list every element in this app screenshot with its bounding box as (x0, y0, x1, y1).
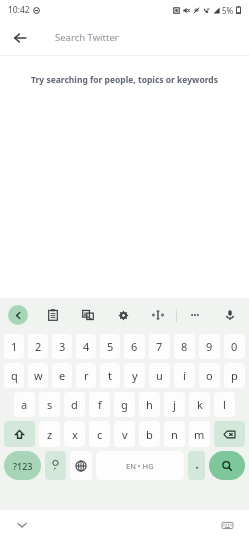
button[interactable]: z (39, 421, 60, 447)
staticText: Search Twitter (55, 31, 119, 44)
button[interactable]: Change language (70, 451, 92, 480)
button[interactable]: Emoji and comma (45, 451, 66, 480)
button[interactable]: 9 (199, 334, 220, 359)
staticText: w (34, 368, 43, 383)
button[interactable]: Back (6, 24, 34, 52)
button[interactable]: f (89, 392, 110, 417)
button[interactable]: Settings (112, 304, 134, 326)
staticText: f (98, 397, 102, 412)
staticText: a (21, 397, 28, 412)
button[interactable]: 2 (28, 334, 48, 359)
button[interactable]: w (28, 363, 48, 388)
button[interactable]: v (114, 421, 135, 447)
button[interactable]: n (164, 421, 185, 447)
staticText: 4 (83, 339, 90, 354)
staticText: 3 (59, 339, 66, 354)
button[interactable]: 7 (149, 334, 170, 359)
button[interactable]: Backspace (214, 421, 245, 447)
staticText: r (84, 368, 89, 383)
staticText: EN • HG (126, 461, 154, 471)
button[interactable]: o (199, 363, 220, 388)
button[interactable]: 0 (224, 334, 245, 359)
button[interactable]: Search (209, 451, 245, 480)
staticText: 7 (156, 339, 163, 354)
button[interactable]: Clipboard (42, 304, 64, 326)
button[interactable]: d (64, 392, 85, 417)
staticText: y (132, 368, 138, 383)
staticText: d (71, 397, 78, 412)
button[interactable]: 3 (52, 334, 72, 359)
button[interactable]: s (39, 392, 60, 417)
staticText: p (231, 368, 238, 383)
staticText: z (47, 427, 53, 442)
button[interactable]: Collapse toolbar (8, 305, 28, 325)
button[interactable]: Text editing (147, 304, 169, 326)
button[interactable]: Period (188, 451, 205, 480)
staticText: 6 (131, 339, 138, 354)
staticText: 8 (181, 339, 188, 354)
button[interactable]: 8 (174, 334, 195, 359)
staticText: ?123 (13, 460, 33, 472)
staticText: 9 (206, 339, 213, 354)
staticText: n (171, 427, 178, 442)
staticText: h (146, 397, 153, 412)
staticText: g (121, 397, 128, 412)
staticText: j (173, 397, 176, 412)
button[interactable]: m (189, 421, 210, 447)
staticText: 2 (35, 339, 42, 354)
button[interactable]: Voice input (219, 304, 241, 326)
button[interactable]: h (139, 392, 160, 417)
staticText: v (122, 427, 128, 442)
staticText: 5% (222, 5, 234, 16)
staticText: t (108, 368, 112, 383)
staticText: s (47, 397, 53, 412)
button[interactable]: 6 (124, 334, 145, 359)
staticText: 5 (107, 339, 114, 354)
button[interactable]: 1 (4, 334, 24, 359)
button[interactable]: r (76, 363, 96, 388)
button[interactable]: a (14, 392, 35, 417)
button[interactable]: t (100, 363, 120, 388)
button[interactable]: g (114, 392, 135, 417)
staticText: q (11, 368, 18, 383)
staticText: u (156, 368, 163, 383)
staticText: e (59, 368, 66, 383)
staticText: i (183, 368, 186, 383)
staticText: k (197, 397, 203, 412)
button[interactable]: Shift (4, 421, 35, 447)
staticText: 10:42 (8, 4, 30, 16)
staticText: c (97, 427, 103, 442)
button[interactable]: Switch input method (215, 513, 239, 537)
button[interactable]: Hide keyboard (10, 513, 34, 537)
staticText: b (146, 427, 153, 442)
button[interactable]: y (124, 363, 145, 388)
button[interactable]: q (4, 363, 24, 388)
button[interactable]: Translate (77, 304, 99, 326)
button[interactable]: e (52, 363, 72, 388)
staticText: 1 (11, 339, 18, 354)
button[interactable]: i (174, 363, 195, 388)
button[interactable]: x (64, 421, 85, 447)
staticText: m (194, 427, 205, 442)
button[interactable]: k (189, 392, 210, 417)
button[interactable]: More options (184, 304, 206, 326)
button[interactable]: l (214, 392, 235, 417)
button[interactable]: 5 (100, 334, 120, 359)
staticText: o (206, 368, 213, 383)
staticText: Try searching for people, topics or keyw… (0, 74, 249, 86)
staticText: 0 (231, 339, 238, 354)
button[interactable]: ?123 (4, 451, 41, 480)
button[interactable]: p (224, 363, 245, 388)
staticText: x (72, 427, 78, 442)
button[interactable]: b (139, 421, 160, 447)
button[interactable]: j (164, 392, 185, 417)
button[interactable]: EN • HG (96, 451, 184, 480)
button[interactable]: Search Twitter (34, 20, 249, 55)
button[interactable]: 4 (76, 334, 96, 359)
button[interactable]: c (89, 421, 110, 447)
staticText: l (223, 397, 226, 412)
button[interactable]: u (149, 363, 170, 388)
